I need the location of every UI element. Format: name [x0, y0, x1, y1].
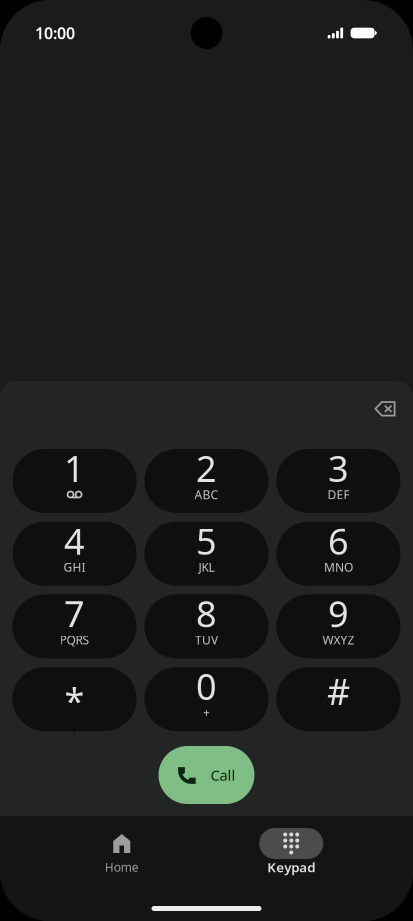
button[interactable]: 1	[12, 449, 137, 513]
staticText: +	[203, 705, 210, 720]
button[interactable]: 6	[276, 522, 400, 586]
staticText: 5	[196, 517, 217, 565]
staticText: *	[65, 676, 85, 724]
staticText: DEF	[327, 486, 349, 502]
button[interactable]: 0	[144, 667, 268, 731]
staticText: PQRS	[60, 632, 90, 648]
staticText: #	[327, 667, 350, 715]
staticText: ABC	[194, 486, 218, 502]
staticText: WXYZ	[322, 632, 354, 648]
button[interactable]: 2	[144, 449, 268, 513]
button[interactable]: Delete	[363, 389, 407, 429]
staticText: Call	[210, 765, 235, 785]
staticText: Home	[105, 859, 139, 875]
button[interactable]: 7	[12, 594, 137, 658]
staticText: 8	[196, 589, 217, 637]
button[interactable]: Call	[158, 746, 254, 804]
staticText: GHI	[64, 559, 86, 575]
button[interactable]: Keypad	[206, 828, 376, 875]
staticText: 1	[64, 444, 85, 492]
button[interactable]: #	[276, 667, 400, 731]
staticText: 0	[196, 662, 217, 710]
staticText: 6	[328, 517, 349, 565]
staticText: 7	[64, 589, 85, 637]
button[interactable]: 3	[276, 449, 400, 513]
staticText: Keypad	[267, 858, 315, 876]
staticText: 2	[196, 444, 217, 492]
button[interactable]: *	[12, 667, 137, 731]
staticText: 9	[328, 589, 349, 637]
button[interactable]: 5	[144, 522, 268, 586]
staticText: JKL	[198, 559, 214, 575]
button[interactable]: 8	[144, 594, 268, 658]
staticText: TUV	[195, 632, 218, 648]
button[interactable]: 9	[276, 594, 400, 658]
staticText: 4	[64, 517, 85, 565]
button[interactable]: 4	[12, 522, 137, 586]
staticText: 10:00	[35, 22, 75, 44]
staticText: 3	[328, 444, 349, 492]
staticText: MNO	[324, 559, 353, 575]
button[interactable]: Home	[37, 828, 206, 875]
